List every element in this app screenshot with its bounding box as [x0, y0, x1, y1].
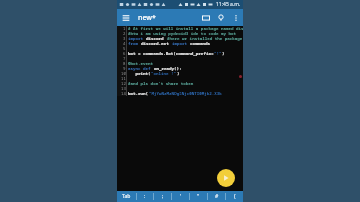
staticText: @bot.event — [128, 61, 154, 66]
staticText: new* — [138, 13, 156, 23]
staticText: print( — [128, 71, 151, 76]
staticText: 13 — [121, 86, 126, 91]
button[interactable]: Toggle keyboard — [198, 10, 213, 25]
staticText: 4 — [123, 41, 126, 46]
staticText: 7 — [123, 56, 126, 61]
staticText: 9 — [123, 66, 126, 71]
staticText: ) — [177, 71, 180, 76]
staticText: 12 — [121, 81, 126, 86]
button[interactable]: Hints — [213, 10, 228, 25]
button[interactable]: More options — [228, 10, 243, 25]
staticText: import — [172, 41, 190, 46]
button[interactable]: : — [137, 191, 153, 202]
staticText: "MjYwNzMzNDg5Njc0NTI0Mjk2.X3k — [149, 91, 222, 96]
staticText: " — [197, 193, 200, 200]
staticText: discord — [146, 36, 167, 41]
staticText: discord.ext — [141, 41, 172, 46]
staticText: 3 — [123, 36, 126, 41]
staticText: 6 — [123, 51, 126, 56]
staticText: # At first we will install a package nam… — [128, 26, 243, 31]
staticText: ' — [180, 193, 182, 200]
staticText: from — [128, 41, 141, 46]
button[interactable]: ( — [226, 191, 243, 202]
staticText: commands — [190, 41, 211, 46]
staticText: 14 — [121, 91, 126, 96]
staticText: Tab — [122, 193, 131, 200]
staticText: #and pls don't share token — [128, 81, 194, 86]
button[interactable]: " — [190, 191, 207, 202]
staticText: bot = commands.Bot(command_prefix= — [128, 51, 214, 56]
staticText: on_ready(): — [154, 66, 182, 71]
staticText: 2 — [123, 31, 126, 36]
button[interactable]: ; — [154, 191, 171, 202]
staticText: 10 — [121, 71, 126, 76]
button[interactable]: Run — [217, 169, 235, 187]
button[interactable]: ' — [172, 191, 189, 202]
staticText: 8 — [123, 61, 126, 66]
button[interactable]: Menu — [117, 9, 134, 26]
staticText: #here wr installed the package — [167, 36, 243, 41]
staticText: 11:45 a.m. — [216, 1, 241, 8]
staticText: ; — [162, 193, 164, 200]
staticText: async def — [128, 66, 154, 71]
staticText: 11 — [121, 76, 126, 81]
button[interactable]: # — [208, 191, 225, 202]
staticText: bot.run( — [128, 91, 149, 96]
staticText: # — [215, 193, 219, 200]
staticText: ) — [222, 51, 225, 56]
staticText: : — [144, 193, 146, 200]
staticText: import — [128, 36, 146, 41]
staticText: #btw i am using pydroid3 ide to code my … — [128, 31, 237, 36]
staticText: 1 — [123, 26, 126, 31]
staticText: "online !" — [151, 71, 177, 76]
staticText: ( — [234, 193, 236, 200]
button[interactable]: Tab — [117, 191, 136, 202]
staticText: 5 — [123, 46, 126, 51]
staticText: "!" — [214, 51, 222, 56]
